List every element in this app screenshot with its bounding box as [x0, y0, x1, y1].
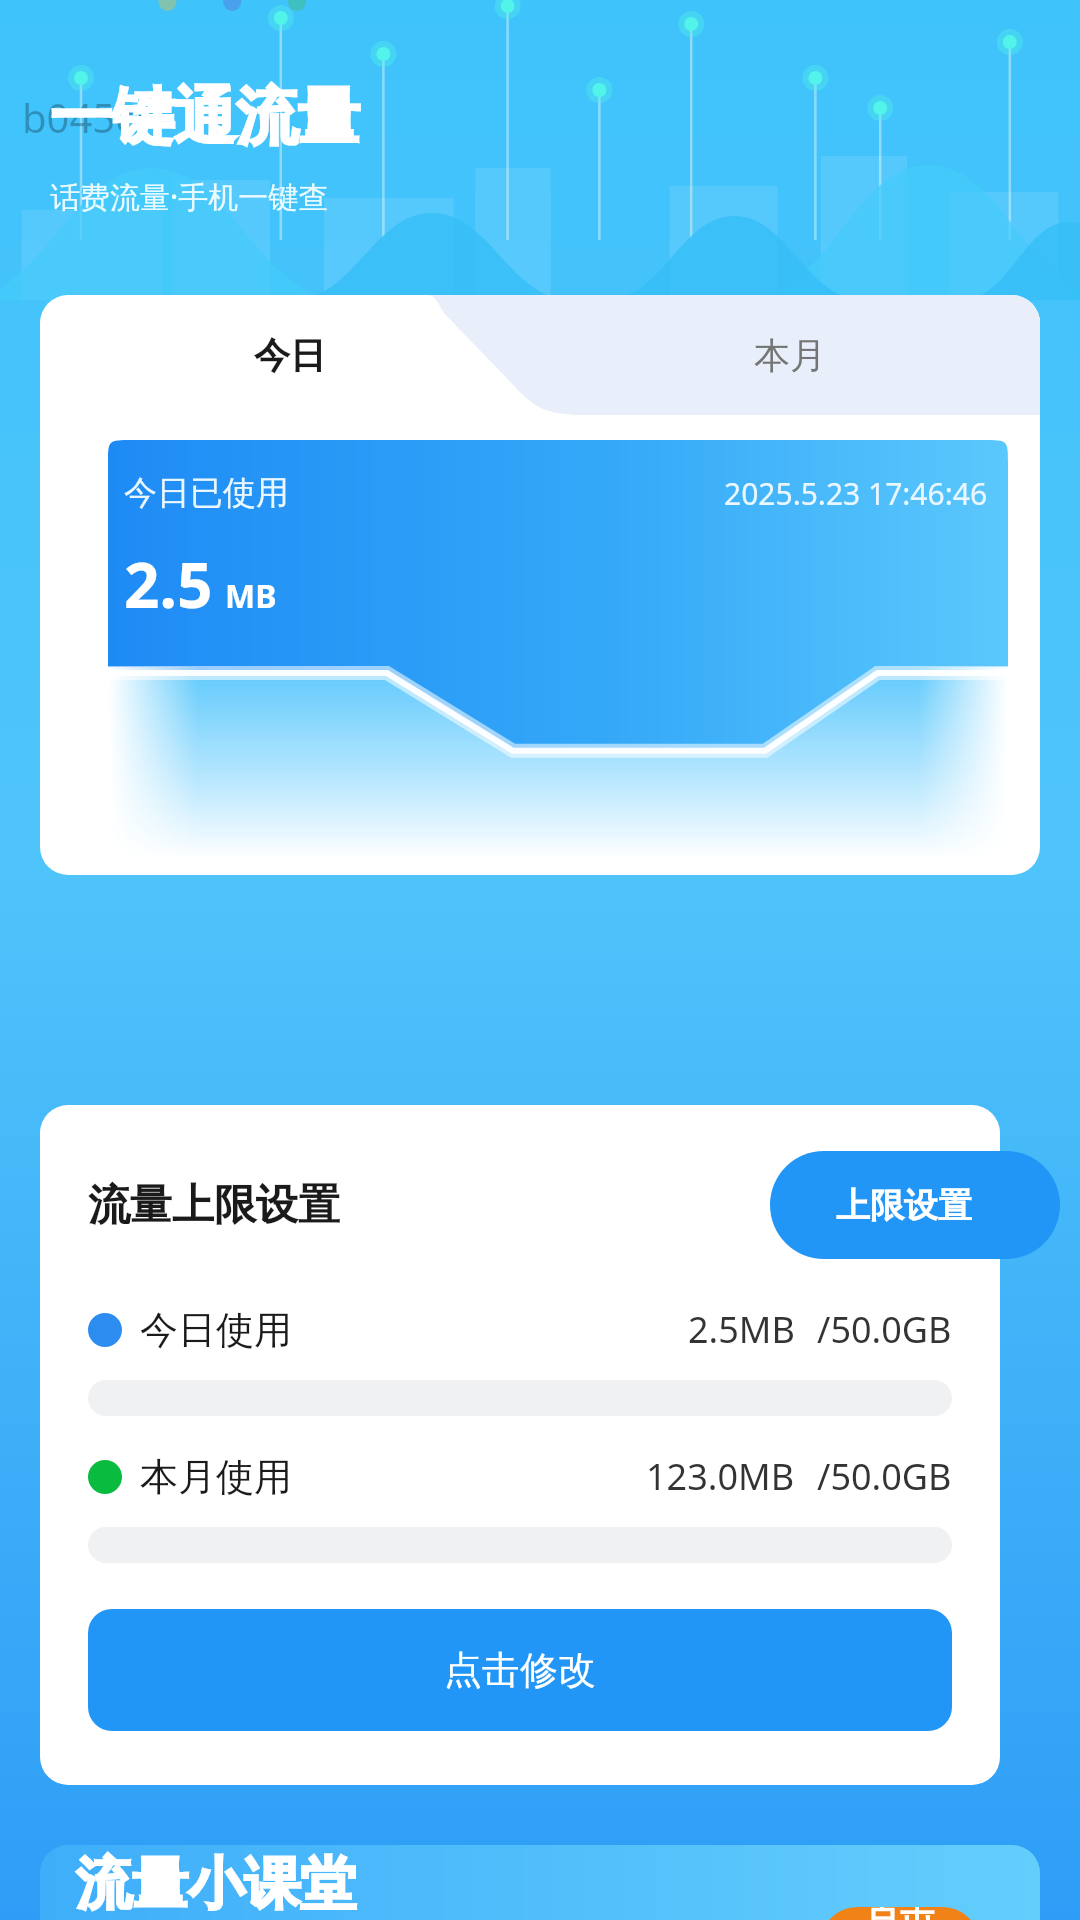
staticText: 今日使用: [140, 1306, 292, 1354]
staticText: /50.0GB: [817, 1452, 952, 1501]
staticText: 今日已使用: [124, 472, 289, 514]
staticText: 点击修改: [444, 1646, 596, 1694]
staticText: MB: [225, 574, 277, 618]
staticText: 本月: [754, 333, 826, 378]
staticText: 本月使用: [140, 1453, 292, 1501]
button[interactable]: 点击修改: [88, 1609, 952, 1731]
button[interactable]: 今日: [40, 295, 540, 415]
staticText: 点击: [866, 1907, 934, 1920]
button[interactable]: 流量小课堂: [40, 1845, 1040, 1920]
staticText: 123.0MB: [646, 1452, 795, 1501]
staticText: 2.5: [124, 542, 213, 626]
staticText: 上限设置: [836, 1184, 972, 1227]
staticText: 今日: [254, 333, 326, 378]
staticText: /50.0GB: [817, 1305, 952, 1354]
staticText: 一键通流量: [50, 78, 360, 156]
button[interactable]: 本月: [540, 295, 1040, 415]
staticText: 2025.5.23 17:46:46: [724, 473, 988, 514]
staticText: b045cf: [22, 90, 149, 144]
button[interactable]: 点击查看: [820, 1907, 980, 1920]
staticText: 话费流量·手机一键查: [50, 176, 329, 217]
staticText: 流量上限设置: [88, 1179, 340, 1232]
staticText: 2.5MB: [688, 1305, 795, 1354]
staticText: 流量小课堂: [76, 1849, 356, 1920]
button[interactable]: 上限设置: [770, 1151, 1060, 1259]
